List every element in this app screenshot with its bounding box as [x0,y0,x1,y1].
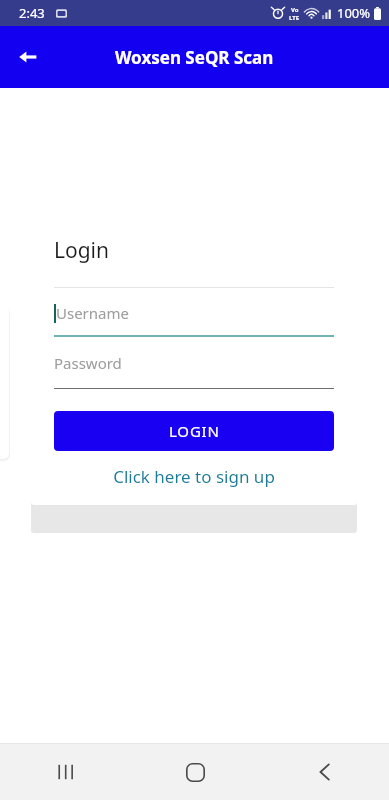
button[interactable]: Click here to sign up [54,459,334,493]
button[interactable]: Recent apps [0,744,130,800]
button[interactable]: LOGIN [54,411,334,451]
staticText: Password [54,353,122,373]
staticText: 2:43 [19,4,45,22]
staticText: 100% [337,4,371,22]
button[interactable]: Password [54,337,334,389]
staticText: Woxsen SeQR Scan [115,46,274,69]
button[interactable]: Home [130,744,260,800]
staticText: LOGIN [169,421,220,441]
button[interactable]: Back [8,37,48,77]
staticText: Vo [291,6,299,14]
staticText: Click here to sign up [113,465,275,488]
button[interactable]: Username [54,288,334,337]
staticText: LTE [289,14,300,20]
staticText: Username [56,303,129,323]
button[interactable]: Back [260,744,389,800]
staticText: Login [54,236,110,265]
